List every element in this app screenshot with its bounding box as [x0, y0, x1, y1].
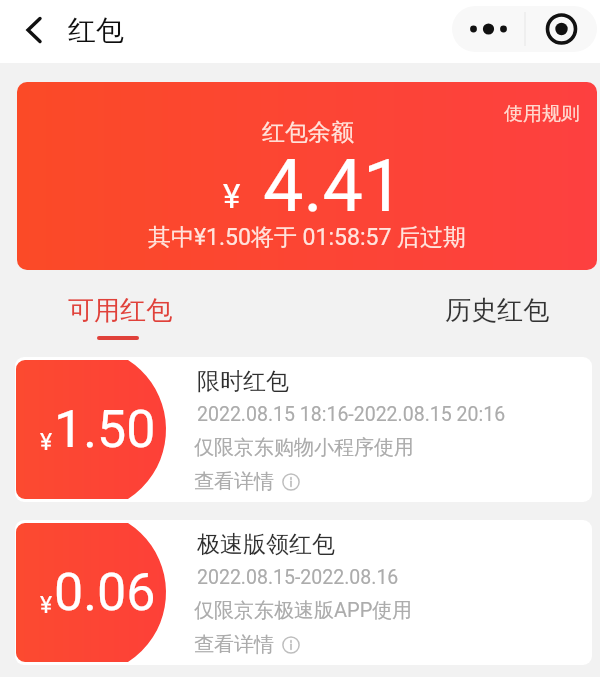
staticText: ¥	[40, 429, 53, 456]
staticText: 极速版领红包	[197, 530, 335, 559]
button[interactable]: 查看详情	[194, 469, 292, 494]
button[interactable]: More options	[452, 6, 597, 52]
button[interactable]: Back	[17, 14, 49, 46]
staticText: 限时红包	[197, 367, 289, 396]
staticText: 仅限京东极速版APP使用	[194, 598, 413, 623]
button[interactable]: ¥	[15, 357, 592, 502]
staticText: 红包	[68, 13, 124, 48]
staticText: 历史红包	[445, 294, 549, 327]
staticText: 2022.08.15 18:16-2022.08.15 20:16	[197, 403, 506, 426]
staticText: 2022.08.15-2022.08.16	[197, 566, 399, 589]
button[interactable]: ¥	[15, 520, 592, 665]
staticText: 4.41	[263, 144, 404, 228]
staticText: ¥	[223, 177, 241, 216]
staticText: 红包余额	[262, 118, 354, 147]
button[interactable]: 查看详情	[194, 632, 292, 657]
staticText: 仅限京东购物小程序使用	[194, 435, 414, 460]
staticText: 查看详情	[194, 632, 274, 657]
staticText: 可用红包	[68, 294, 172, 327]
staticText: ¥	[40, 592, 53, 619]
staticText: 其中¥1.50将于 01:58:57 后过期	[17, 223, 597, 252]
staticText: 0.06	[54, 562, 156, 623]
button[interactable]: 使用规则	[17, 82, 93, 106]
staticText: 查看详情	[194, 469, 274, 494]
button[interactable]: 历史红包	[300, 282, 600, 342]
button[interactable]: 可用红包	[0, 282, 300, 342]
staticText: 1.50	[54, 399, 156, 460]
